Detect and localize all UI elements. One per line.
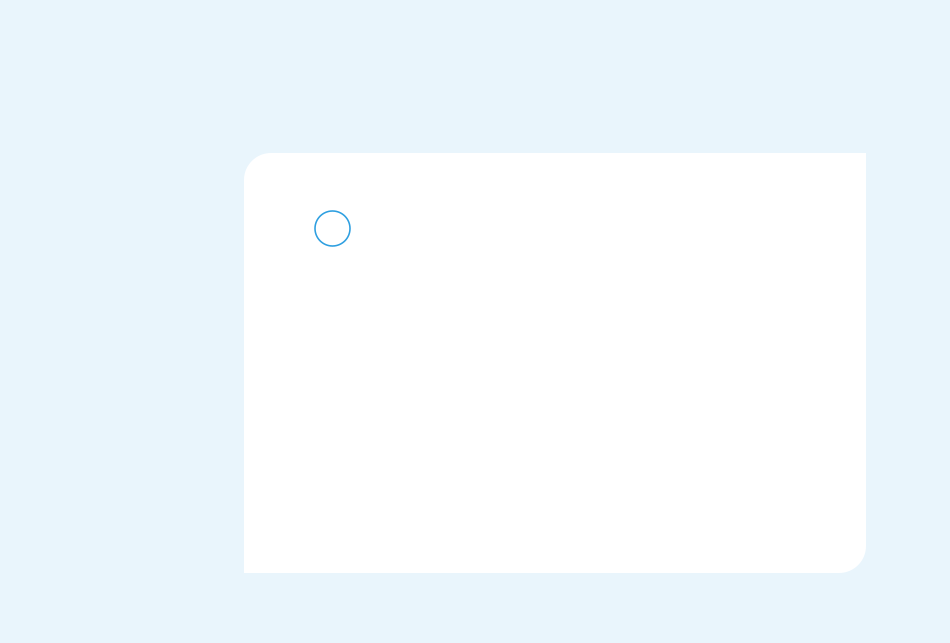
button[interactable]: Select [315,211,350,246]
